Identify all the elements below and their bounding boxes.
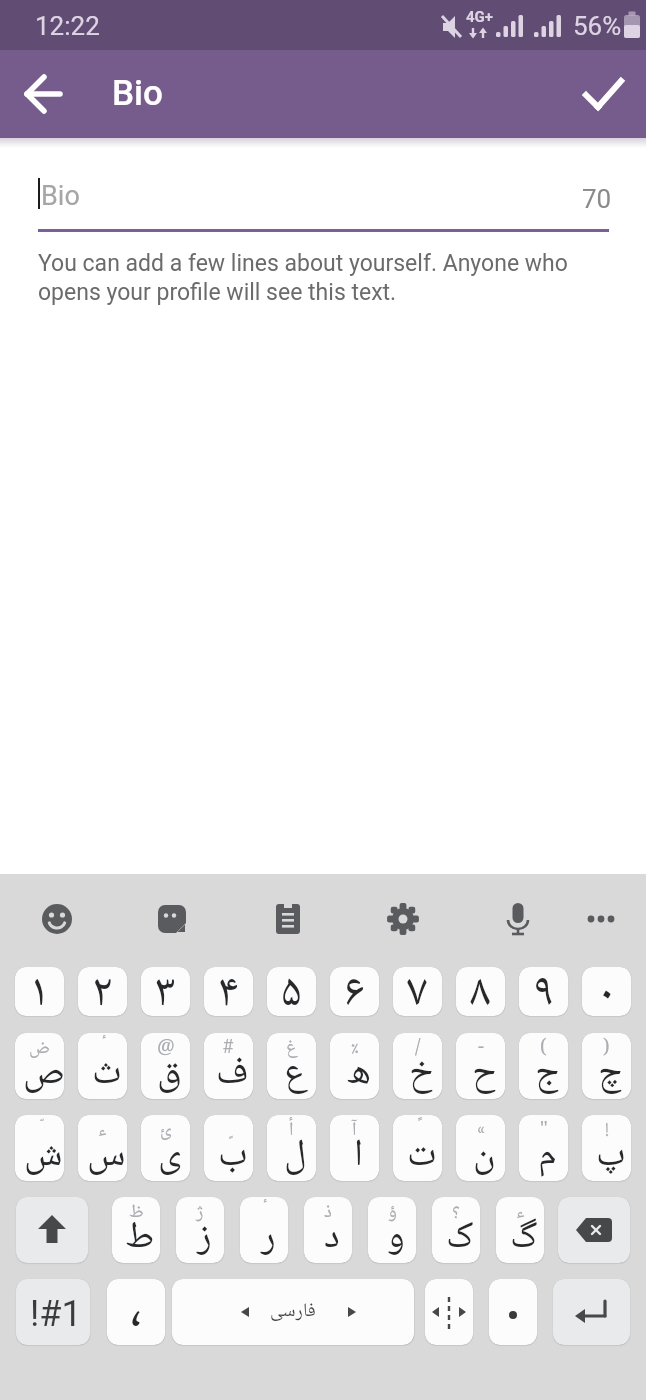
staticText: ث — [92, 1042, 122, 1099]
staticText: ذ — [324, 1197, 332, 1229]
button[interactable]: فارسی — [172, 1279, 414, 1345]
staticText: ن — [473, 1124, 496, 1181]
button[interactable] — [144, 891, 200, 947]
button[interactable]: ک — [432, 1197, 480, 1263]
button[interactable]: ش — [15, 1115, 64, 1181]
button[interactable]: گ — [496, 1197, 544, 1263]
staticText: " — [540, 1115, 548, 1147]
button[interactable]: و — [368, 1197, 416, 1263]
button[interactable]: ۴ — [204, 967, 253, 1016]
staticText: Bio — [41, 180, 80, 212]
staticText: « — [477, 1115, 485, 1147]
staticText: ؤ — [388, 1197, 397, 1229]
button[interactable]: م — [519, 1115, 568, 1181]
button[interactable]: ۰ — [582, 967, 631, 1016]
staticText: ۷ — [407, 967, 428, 1016]
staticText: ! — [605, 1115, 609, 1147]
button[interactable]: ت — [393, 1115, 442, 1181]
button[interactable] — [260, 891, 316, 947]
button[interactable] — [0, 50, 88, 138]
button[interactable]: ه — [330, 1033, 379, 1099]
staticText: پ — [596, 1124, 626, 1181]
button[interactable]: ۸ — [456, 967, 505, 1016]
staticText: چ — [598, 1042, 623, 1099]
staticText: Bio — [112, 73, 163, 114]
staticText: 4G+ — [466, 8, 494, 26]
staticText: ط — [125, 1206, 155, 1263]
staticText: ر — [261, 1206, 276, 1263]
staticText: ئ — [160, 1115, 172, 1147]
staticText: 56% — [573, 11, 622, 41]
staticText: ف — [216, 1042, 249, 1099]
button[interactable]: ۷ — [393, 967, 442, 1016]
button[interactable] — [375, 891, 431, 947]
button[interactable]: ح — [456, 1033, 505, 1099]
staticText: ۸ — [470, 967, 491, 1016]
staticText: س — [87, 1124, 126, 1181]
button[interactable]: پ — [582, 1115, 631, 1181]
staticText: غ — [286, 1033, 298, 1065]
staticText: @ — [157, 1033, 175, 1065]
button[interactable]: د — [304, 1197, 352, 1263]
staticText: ک — [446, 1206, 474, 1263]
staticText: فارسی — [270, 1296, 316, 1328]
button[interactable] — [29, 891, 85, 947]
button[interactable]: ن — [456, 1115, 505, 1181]
button[interactable]: ۳ — [141, 967, 190, 1016]
staticText: ه — [347, 1042, 371, 1099]
button[interactable]: !#1 — [16, 1279, 90, 1345]
button[interactable]: ف — [204, 1033, 253, 1099]
button[interactable]: ع — [267, 1033, 316, 1099]
staticText: ز — [197, 1206, 212, 1263]
button[interactable]: ۱ — [15, 967, 64, 1016]
button[interactable]: ، — [107, 1279, 165, 1345]
staticText: ج — [535, 1042, 560, 1099]
staticText: / — [415, 1033, 421, 1065]
button[interactable] — [16, 1197, 88, 1263]
button[interactable]: ر — [240, 1197, 288, 1263]
staticText: ۱ — [29, 967, 50, 1016]
button[interactable] — [490, 891, 546, 947]
button[interactable]: ب — [204, 1115, 253, 1181]
staticText: و — [387, 1206, 405, 1263]
button[interactable]: ق — [141, 1033, 190, 1099]
button[interactable]: ج — [519, 1033, 568, 1099]
button[interactable]: چ — [582, 1033, 631, 1099]
staticText: ۰ — [596, 967, 617, 1016]
button[interactable]: ۹ — [519, 967, 568, 1016]
staticText: گ — [510, 1206, 538, 1263]
button[interactable] — [573, 891, 629, 947]
button[interactable] — [558, 1197, 630, 1263]
button[interactable]: ا — [330, 1115, 379, 1181]
staticText: ظ — [129, 1197, 144, 1229]
staticText: !#1 — [30, 1293, 82, 1335]
button[interactable]: ل — [267, 1115, 316, 1181]
button[interactable]: ز — [176, 1197, 224, 1263]
staticText: م — [538, 1124, 557, 1181]
button[interactable] — [425, 1279, 473, 1345]
button[interactable]: ط — [112, 1197, 160, 1263]
staticText: ق — [157, 1042, 182, 1099]
button[interactable]: ۲ — [78, 967, 127, 1016]
button[interactable] — [553, 1279, 630, 1345]
staticText: ع — [284, 1042, 307, 1099]
staticText: opens your profile will see this text. — [38, 279, 397, 306]
button[interactable] — [568, 50, 646, 138]
button[interactable] — [489, 1279, 537, 1345]
staticText: ٪ — [351, 1033, 359, 1065]
button[interactable]: ۵ — [267, 967, 316, 1016]
button[interactable]: ص — [15, 1033, 64, 1099]
button[interactable]: ی — [141, 1115, 190, 1181]
staticText: ء — [516, 1197, 525, 1229]
staticText: آ — [352, 1115, 357, 1147]
staticText: أ — [289, 1115, 294, 1147]
staticText: خ — [409, 1042, 434, 1099]
button[interactable]: س — [78, 1115, 127, 1181]
staticText: ی — [158, 1124, 182, 1181]
button[interactable]: ث — [78, 1033, 127, 1099]
button[interactable]: خ — [393, 1033, 442, 1099]
button[interactable]: ۶ — [330, 967, 379, 1016]
staticText: ش — [24, 1124, 63, 1181]
button[interactable] — [38, 165, 608, 227]
